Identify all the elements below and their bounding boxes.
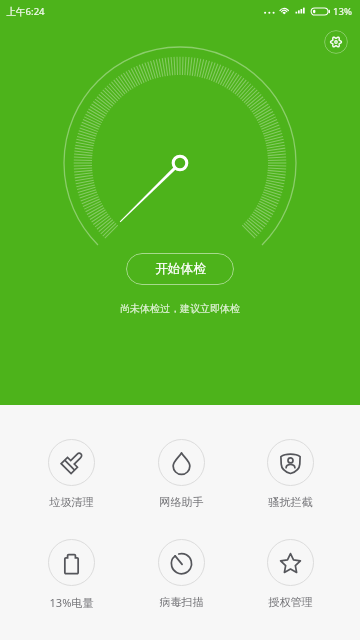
button[interactable]: 垃圾清理 [24,439,118,509]
staticText: 开始体检 [155,261,206,277]
staticText: 13% [333,5,352,18]
staticText: 上午6:24 [6,5,45,18]
staticText: 网络助手 [159,495,204,509]
staticText: 骚扰拦截 [268,495,313,509]
button[interactable]: Settings [324,30,348,54]
staticText: 病毒扫描 [159,595,204,609]
button[interactable]: 13%电量 [24,539,118,610]
button[interactable]: 骚扰拦截 [243,439,337,509]
staticText: 13%电量 [49,595,94,610]
staticText: 授权管理 [268,595,313,609]
button[interactable]: 网络助手 [134,439,228,509]
staticText: 尚未体检过，建议立即体检 [120,302,240,315]
staticText: 垃圾清理 [49,495,94,509]
button[interactable]: 开始体检 [126,253,234,285]
button[interactable]: 病毒扫描 [134,539,228,609]
button[interactable]: 授权管理 [243,539,337,609]
